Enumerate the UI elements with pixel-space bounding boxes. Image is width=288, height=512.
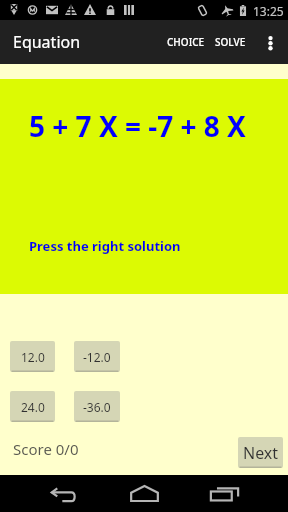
button[interactable]: Back bbox=[40, 475, 88, 512]
staticText: -36.0 bbox=[83, 399, 111, 415]
staticText: Equation bbox=[13, 31, 81, 53]
staticText: 24.0 bbox=[21, 399, 45, 415]
staticText: Score 0/0 bbox=[13, 439, 79, 459]
button[interactable]: -36.0 bbox=[74, 391, 120, 422]
staticText: -12.0 bbox=[83, 349, 111, 365]
staticText: SOLVE bbox=[215, 35, 246, 49]
button[interactable]: SOLVE bbox=[207, 20, 254, 64]
staticText: Next bbox=[243, 442, 279, 464]
staticText: Press the right solution bbox=[29, 237, 181, 255]
button[interactable]: 24.0 bbox=[10, 391, 55, 422]
staticText: 13:25 bbox=[253, 3, 284, 19]
button[interactable]: Recents bbox=[200, 475, 248, 512]
staticText: CHOICE bbox=[167, 35, 205, 49]
staticText: 5 + 7 X = -7 + 8 X bbox=[29, 107, 246, 145]
button[interactable]: 12.0 bbox=[10, 341, 55, 372]
button[interactable]: -12.0 bbox=[74, 341, 120, 372]
staticText: 12.0 bbox=[21, 349, 45, 365]
button[interactable]: More options bbox=[251, 20, 288, 64]
button[interactable]: CHOICE bbox=[159, 20, 213, 64]
button[interactable]: Next bbox=[238, 437, 283, 468]
button[interactable]: Home bbox=[120, 475, 168, 512]
